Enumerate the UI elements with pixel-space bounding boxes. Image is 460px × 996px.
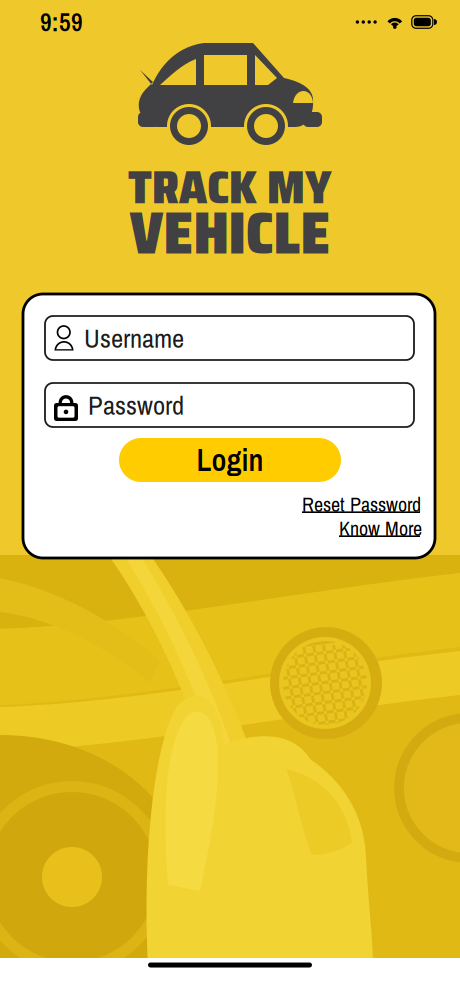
- staticText: 9:59: [40, 5, 83, 39]
- button[interactable]: Reset Password: [302, 491, 420, 513]
- staticText: Password: [88, 387, 184, 423]
- button[interactable]: Login: [119, 438, 341, 482]
- staticText: VEHICLE: [129, 187, 330, 279]
- staticText: TRACK MY: [128, 150, 332, 224]
- button[interactable]: Know More: [339, 515, 420, 537]
- staticText: Login: [196, 439, 263, 481]
- staticText: Username: [84, 320, 184, 356]
- staticText: Know More: [339, 515, 422, 542]
- staticText: Reset Password: [302, 491, 421, 518]
